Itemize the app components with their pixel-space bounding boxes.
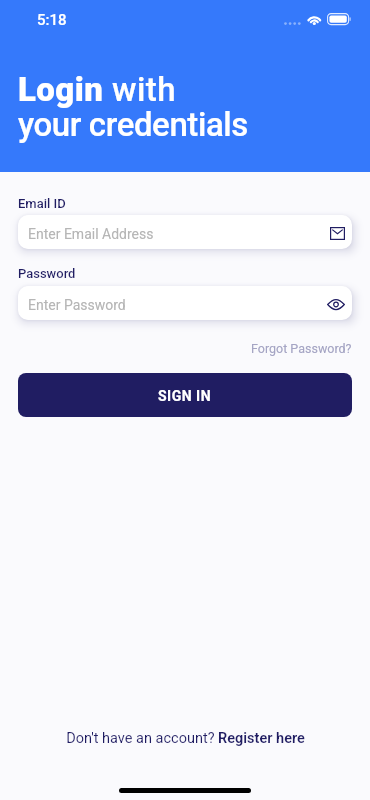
staticText: SIGN IN xyxy=(158,388,212,404)
staticText: your credentials xyxy=(18,105,248,144)
staticText: Enter Password xyxy=(28,297,126,313)
staticText: 5:18 xyxy=(37,11,67,29)
staticText: Don't have an account? Register here xyxy=(66,730,305,747)
staticText: Enter Email Address xyxy=(28,226,154,242)
button[interactable]: Enter Password xyxy=(18,286,352,320)
staticText: Forgot Password? xyxy=(251,341,352,356)
staticText: Password xyxy=(18,266,76,281)
button[interactable]: Enter Email Address xyxy=(18,215,352,249)
other: Show password xyxy=(327,299,345,310)
button[interactable]: Don't have an account? Register here xyxy=(0,730,370,747)
staticText: Email ID xyxy=(18,196,66,211)
other: Email xyxy=(330,227,345,240)
staticText: Login with xyxy=(18,70,177,109)
button[interactable]: SIGN IN xyxy=(18,373,352,417)
button[interactable]: Forgot Password? xyxy=(251,341,352,356)
